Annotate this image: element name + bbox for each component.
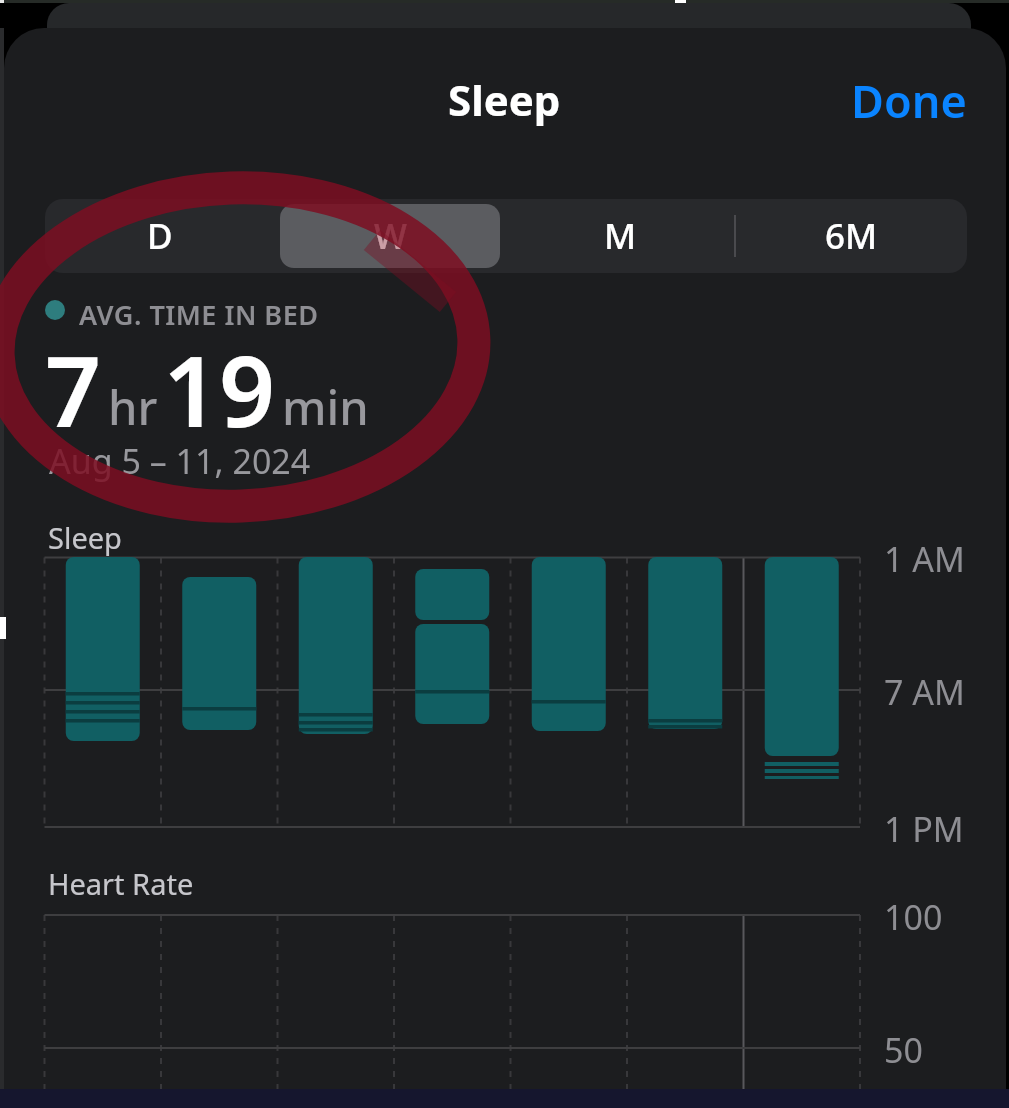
staticText: Sleep <box>48 518 122 557</box>
staticText: min <box>282 375 369 439</box>
button[interactable]: M <box>510 204 731 268</box>
staticText: Done <box>851 70 967 131</box>
staticText: Heart Rate <box>48 864 194 903</box>
button[interactable]: W <box>280 204 500 268</box>
staticText: hr <box>108 375 158 439</box>
staticText: AVG. TIME IN BED <box>79 296 319 333</box>
staticText: D <box>147 212 173 260</box>
staticText: 7 AM <box>884 669 965 715</box>
staticText: 50 <box>884 1027 923 1073</box>
staticText: Sleep <box>448 71 561 128</box>
button[interactable]: Done <box>851 70 967 131</box>
staticText: 7 <box>45 322 102 455</box>
staticText: M <box>604 212 637 260</box>
staticText: 100 <box>884 894 943 940</box>
staticText: 1 AM <box>884 536 965 582</box>
button[interactable]: D <box>50 204 270 268</box>
staticText: W <box>374 212 407 260</box>
button[interactable]: 6M <box>741 204 962 268</box>
staticText: 19 <box>163 322 276 455</box>
staticText: 1 PM <box>884 806 964 852</box>
staticText: 6M <box>825 212 878 260</box>
staticText: Aug 5 – 11, 2024 <box>49 438 311 484</box>
